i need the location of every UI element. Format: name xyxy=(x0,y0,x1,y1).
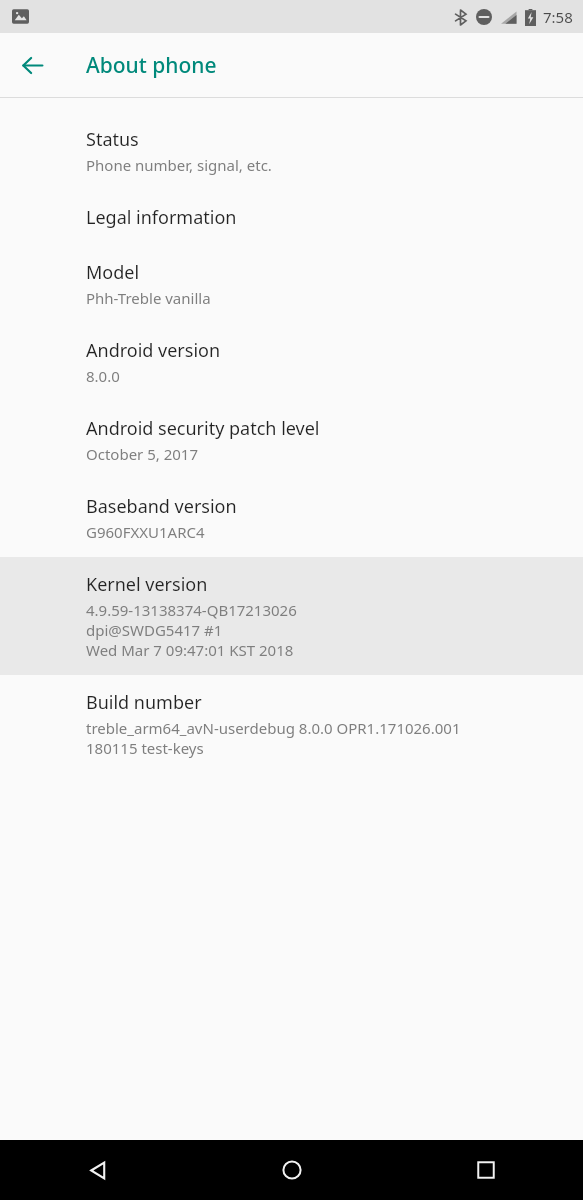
staticText: Status xyxy=(86,127,139,152)
staticText: 7:58 xyxy=(543,7,573,27)
staticText: Wed Mar 7 09:47:01 KST 2018 xyxy=(86,640,294,660)
staticText: 8.0.0 xyxy=(86,366,120,386)
staticText: Phh-Treble vanilla xyxy=(86,288,211,308)
button[interactable]: Back xyxy=(8,41,56,89)
button[interactable]: Baseband version xyxy=(0,479,583,557)
staticText: dpi@SWDG5417 #1 xyxy=(86,620,223,640)
button[interactable]: Recent apps xyxy=(389,1140,583,1200)
staticText: Model xyxy=(86,260,140,285)
button[interactable]: Legal information xyxy=(0,190,583,245)
staticText: Android version xyxy=(86,338,221,363)
button[interactable]: Kernel version xyxy=(0,557,583,675)
staticText: Kernel version xyxy=(86,572,208,597)
button[interactable]: Back xyxy=(0,1140,195,1200)
button[interactable]: Home xyxy=(195,1140,389,1200)
staticText: 180115 test-keys xyxy=(86,738,204,758)
staticText: G960FXXU1ARC4 xyxy=(86,522,205,542)
button[interactable]: Status xyxy=(0,112,583,190)
staticText: About phone xyxy=(86,51,217,80)
button[interactable]: Build number xyxy=(0,675,583,773)
button[interactable]: Model xyxy=(0,245,583,323)
button[interactable]: Android version xyxy=(0,323,583,401)
staticText: 4.9.59-13138374-QB17213026 xyxy=(86,600,297,620)
staticText: Baseband version xyxy=(86,494,237,519)
staticText: Build number xyxy=(86,690,202,715)
button[interactable]: Android security patch level xyxy=(0,401,583,479)
staticText: October 5, 2017 xyxy=(86,444,199,464)
staticText: Android security patch level xyxy=(86,416,320,441)
staticText: treble_arm64_avN-userdebug 8.0.0 OPR1.17… xyxy=(86,718,461,738)
staticText: Phone number, signal, etc. xyxy=(86,155,272,175)
staticText: Legal information xyxy=(86,205,237,230)
